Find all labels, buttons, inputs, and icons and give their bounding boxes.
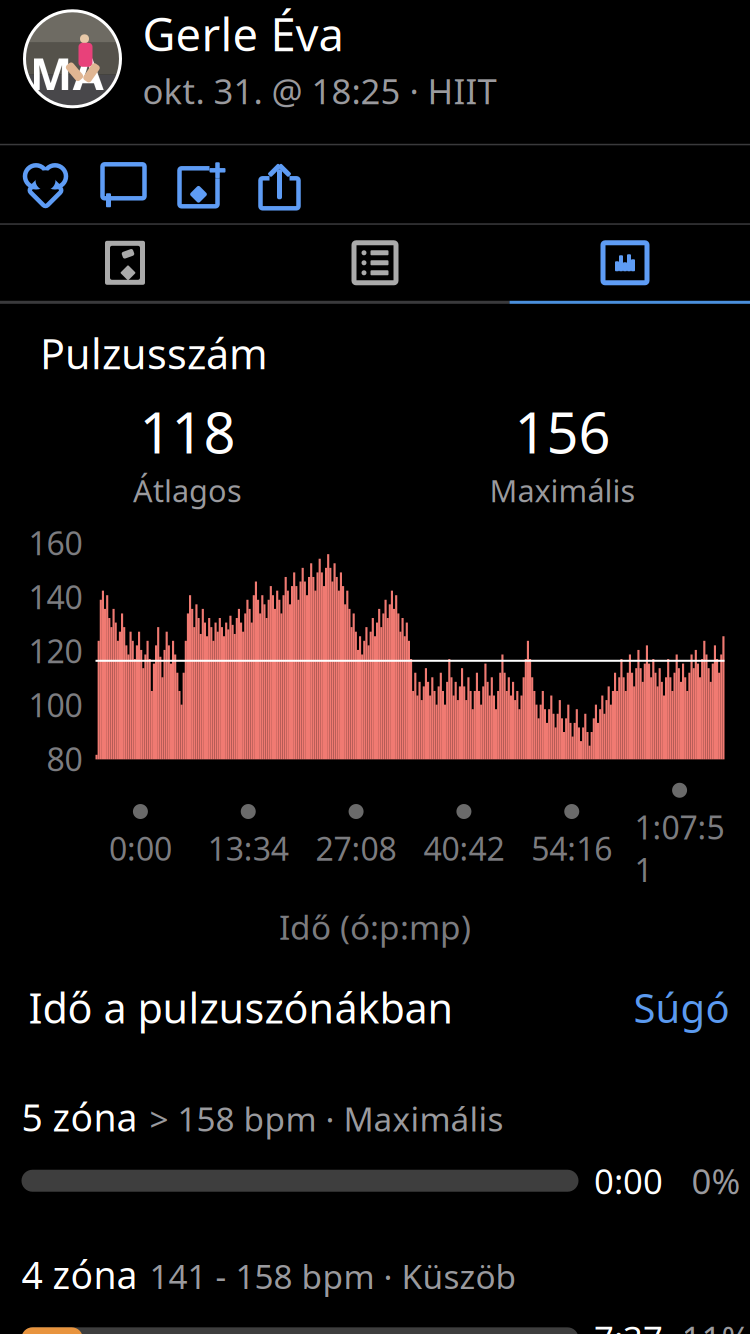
staticText: 11% — [681, 1315, 750, 1334]
staticText: 40:42 — [423, 827, 504, 869]
staticText: 5 zóna — [21, 1092, 137, 1142]
staticText: 0:00 — [109, 827, 172, 869]
staticText: 141 - 158 bpm · Küszöb — [149, 1254, 516, 1298]
staticText: 4 zóna — [21, 1250, 137, 1299]
button[interactable]: Add photo — [162, 145, 240, 223]
button[interactable]: Splits — [250, 225, 500, 301]
staticText: > 158 bpm · Maximális — [149, 1096, 503, 1141]
button[interactable]: Map — [0, 225, 250, 301]
staticText: Idő a pulzuszónákban — [28, 980, 453, 1035]
button[interactable]: Analysis — [500, 225, 750, 301]
staticText: 0:00 — [594, 1158, 663, 1204]
staticText: 100 — [28, 683, 82, 726]
staticText: 120 — [28, 629, 82, 672]
staticText: 118 — [139, 395, 235, 469]
staticText: MA — [29, 43, 103, 103]
button[interactable]: Share — [240, 145, 318, 223]
button[interactable]: Comment — [84, 145, 162, 223]
staticText: okt. 31. @ 18:25 · HIIT — [142, 68, 496, 114]
staticText: Idő (ó:p:mp) — [279, 905, 471, 949]
staticText: 1:07:51 — [635, 806, 725, 891]
staticText: 156 — [514, 395, 610, 469]
button[interactable]: Súgó — [625, 975, 737, 1040]
staticText: Gerle Éva — [142, 4, 343, 64]
staticText: 13:34 — [208, 827, 289, 869]
staticText: 0% — [691, 1158, 740, 1204]
staticText: 7:37 — [594, 1315, 663, 1334]
button[interactable]: Like — [6, 145, 84, 223]
staticText: Pulzusszám — [40, 326, 268, 381]
staticText: 27:08 — [316, 827, 397, 869]
staticText: Maximális — [489, 470, 635, 511]
staticText: 140 — [28, 575, 82, 618]
staticText: 54:16 — [531, 827, 612, 869]
staticText: 160 — [28, 521, 82, 564]
staticText: Súgó — [633, 981, 729, 1034]
staticText: Átlagos — [133, 470, 242, 511]
staticText: 80 — [46, 737, 82, 780]
